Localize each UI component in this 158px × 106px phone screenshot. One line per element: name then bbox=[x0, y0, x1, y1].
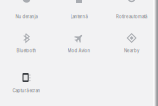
button[interactable]: Mod Avion bbox=[53, 0, 105, 106]
staticText: Bluetooth bbox=[16, 48, 36, 53]
button[interactable]: Nu deranja bbox=[0, 0, 53, 106]
staticText: Rotire automată bbox=[116, 14, 147, 19]
button[interactable]: Nearby bbox=[105, 0, 158, 106]
button[interactable]: Captură ecran bbox=[0, 0, 53, 106]
staticText: Captură ecran bbox=[12, 88, 40, 93]
staticText: Nu deranja bbox=[15, 14, 37, 19]
button[interactable]: Lanternă bbox=[53, 0, 105, 106]
button[interactable]: Bluetooth bbox=[0, 0, 53, 106]
staticText: Nearby bbox=[124, 48, 139, 53]
staticText: Mod Avion bbox=[67, 48, 90, 53]
button[interactable]: Rotire automată bbox=[105, 0, 158, 106]
staticText: Lanternă bbox=[70, 14, 87, 19]
